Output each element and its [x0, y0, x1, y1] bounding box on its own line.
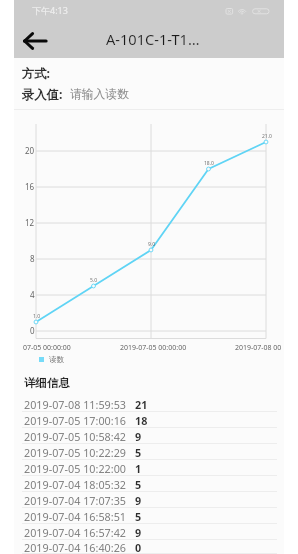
staticText: 18 [135, 413, 148, 428]
staticText: 0 [30, 325, 35, 336]
staticText: 1 [135, 461, 142, 476]
staticText: 2019-07-04 16:40:26 [24, 540, 127, 554]
staticText: 9 [135, 525, 142, 540]
button[interactable]: 2019-07-05 10:58:42 [14, 428, 284, 444]
staticText: 2019-07-04 18:05:32 [24, 477, 127, 492]
staticText: 2019-07-08 11:59:53 [24, 397, 127, 412]
staticText: 07-05 00:00:00 [23, 343, 71, 353]
button[interactable]: 2019-07-04 16:58:51 [14, 508, 284, 524]
button[interactable]: 2019-07-04 16:40:26 [14, 540, 284, 554]
staticText: 2019-07-05 10:58:42 [24, 429, 127, 444]
staticText: 0 [135, 540, 142, 554]
staticText: 20 [25, 145, 35, 156]
staticText: 18.0 [204, 160, 214, 167]
staticText: 9 [135, 429, 142, 444]
button[interactable]: 2019-07-05 10:22:00 [14, 460, 284, 476]
staticText: 8 [30, 253, 35, 264]
button[interactable]: 2019-07-04 17:07:35 [14, 492, 284, 508]
staticText: 9.0 [148, 241, 156, 248]
staticText: 5 [135, 477, 142, 492]
staticText: 2019-07-05 10:22:00 [24, 461, 127, 476]
staticText: 2019-07-04 17:07:35 [24, 493, 127, 508]
button[interactable]: 2019-07-05 10:22:29 [14, 444, 284, 460]
staticText: 详细信息 [24, 376, 70, 390]
staticText: 2019-07-05 10:22:29 [24, 445, 127, 460]
staticText: 2019-07-04 16:58:51 [24, 509, 127, 524]
button[interactable]: 2019-07-04 18:05:32 [14, 476, 284, 492]
staticText: 1.0 [33, 313, 41, 320]
button[interactable]: 2019-07-04 16:57:42 [14, 524, 284, 540]
staticText: 方式: [22, 65, 51, 82]
staticText: 读数 [49, 355, 64, 364]
staticText: 12 [25, 217, 35, 228]
staticText: 2019-07-05 17:00:16 [24, 413, 127, 428]
staticText: 16 [25, 181, 35, 192]
staticText: 4 [30, 289, 35, 300]
staticText: 2019-07-05 00:00:00 [120, 343, 187, 353]
staticText: 下午4:13 [32, 4, 68, 16]
staticText: 请输入读数 [70, 87, 129, 102]
staticText: A-101C-1-T1… [106, 29, 200, 49]
button[interactable]: 2019-07-05 17:00:16 [14, 412, 284, 428]
staticText: 9 [135, 493, 142, 508]
staticText: 2019-07-04 16:57:42 [24, 525, 127, 540]
staticText: 5 [135, 445, 142, 460]
staticText: 录入值: [22, 86, 63, 103]
staticText: 21 [135, 397, 148, 412]
staticText: 2019-07-08 00 [235, 343, 282, 353]
staticText: 21.0 [262, 133, 272, 140]
staticText: 5 [135, 509, 142, 524]
staticText: 5.0 [90, 277, 98, 284]
button[interactable]: Back [15, 22, 55, 60]
button[interactable]: 2019-07-08 11:59:53 [14, 396, 284, 412]
